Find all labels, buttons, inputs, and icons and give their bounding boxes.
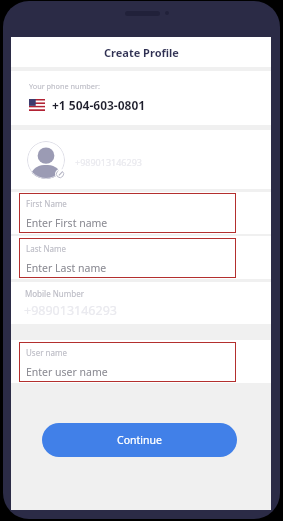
staticText: Enter Last name [26,261,107,275]
staticText: User name [26,347,67,358]
staticText: Continue [117,433,162,447]
staticText: First Name [26,198,67,209]
staticText: Enter user name [26,365,108,379]
staticText: Last Name [26,243,67,254]
staticText: +989013146293 [75,156,142,168]
button[interactable]: Last Name [19,238,236,278]
staticText: Create Profile [104,45,179,60]
button[interactable]: User name [19,342,236,382]
staticText: +989013146293 [24,302,117,319]
button[interactable]: Continue [42,423,237,457]
button[interactable]: Edit profile photo [55,169,65,179]
button[interactable]: First Name [19,193,236,233]
staticText: +1 504-603-0801 [52,97,146,113]
staticText: Your phone number: [29,81,100,91]
button[interactable]: Create Profile [98,42,185,63]
staticText: Enter First name [26,216,108,230]
staticText: Mobile Number [25,288,84,299]
